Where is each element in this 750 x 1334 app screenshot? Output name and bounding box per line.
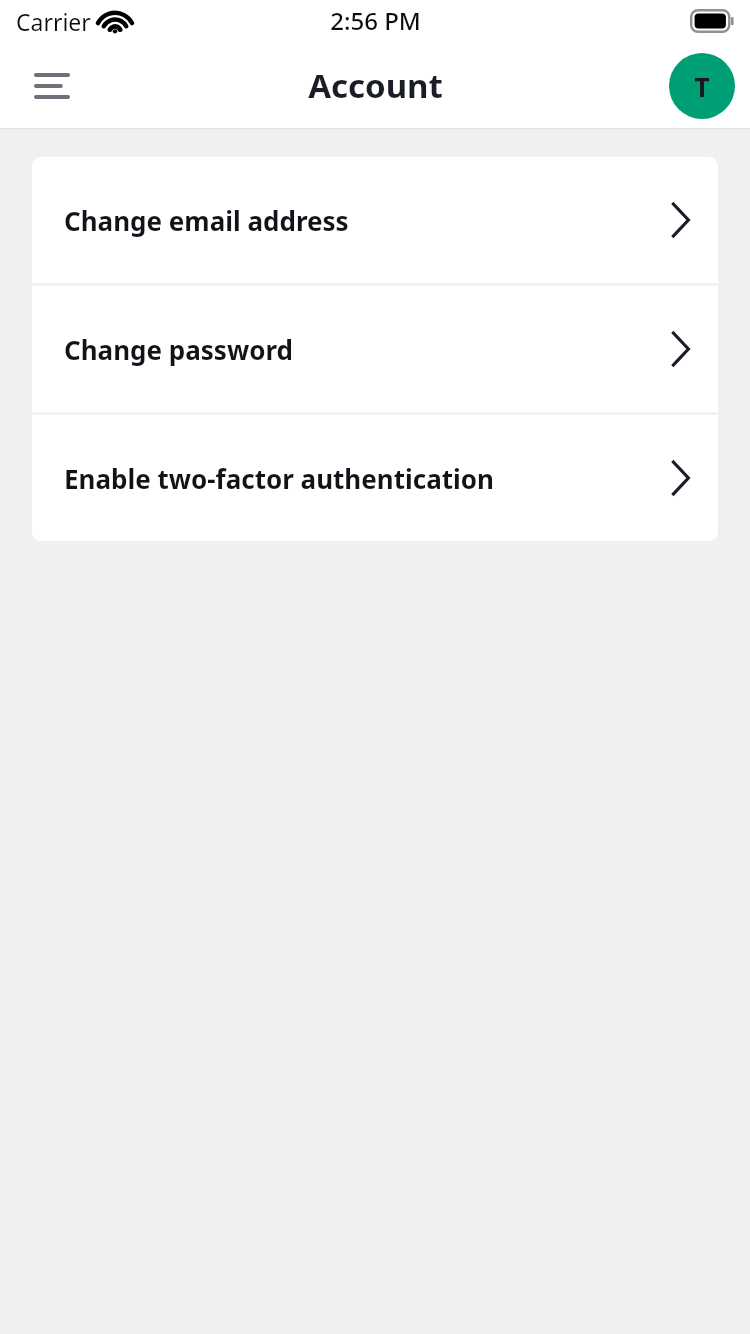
staticText: Carrier bbox=[16, 6, 91, 37]
button[interactable]: Enable two-factor authentication bbox=[32, 415, 718, 541]
button[interactable]: Change email address bbox=[32, 157, 718, 283]
staticText: Enable two-factor authentication bbox=[64, 461, 665, 496]
button[interactable]: Open navigation menu bbox=[20, 54, 84, 118]
button[interactable]: Account profile bbox=[669, 53, 735, 119]
button[interactable]: Change password bbox=[32, 286, 718, 412]
staticText: Account bbox=[308, 63, 443, 108]
staticText: Change password bbox=[64, 332, 665, 367]
staticText: Change email address bbox=[64, 203, 665, 238]
staticText: 2:56 PM bbox=[330, 4, 421, 37]
staticText: T bbox=[694, 69, 710, 104]
